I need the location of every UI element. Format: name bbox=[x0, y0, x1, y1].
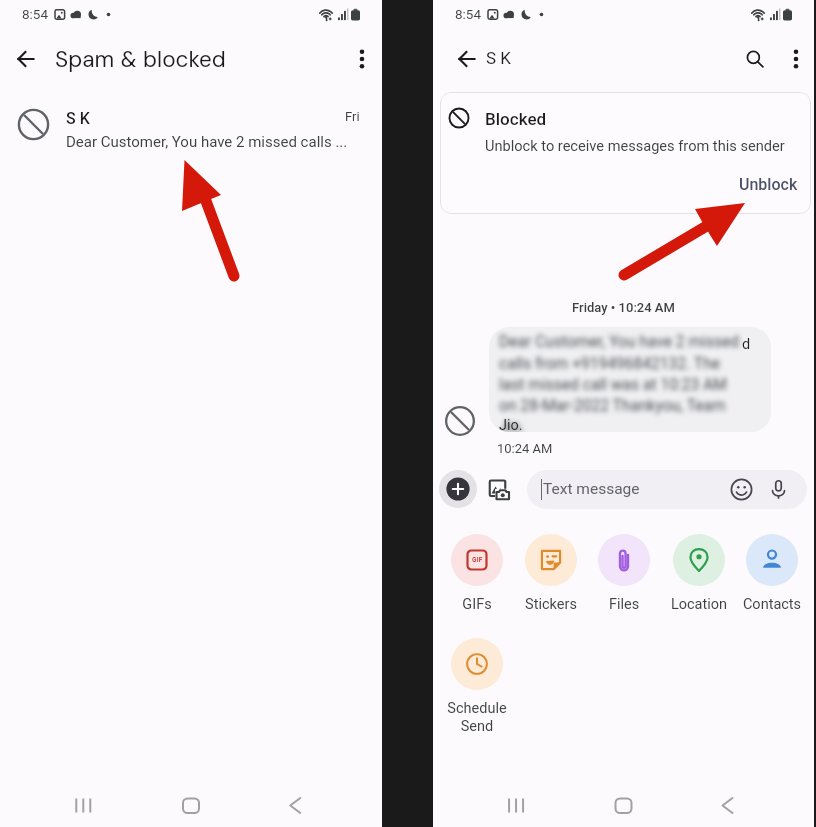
button[interactable]: Location bbox=[662, 534, 736, 613]
button[interactable]: Unblock bbox=[732, 171, 805, 198]
button[interactable]: Files bbox=[587, 534, 661, 613]
staticText: Dear Customer, You have 2 missed calls f… bbox=[499, 333, 740, 432]
button[interactable]: GIF bbox=[440, 534, 514, 613]
staticText: Contacts bbox=[735, 596, 809, 613]
button[interactable]: Schedule Send bbox=[440, 638, 514, 735]
button[interactable]: Contacts bbox=[735, 534, 809, 613]
staticText: S K bbox=[486, 48, 511, 68]
staticText: Blocked bbox=[485, 109, 547, 129]
staticText: Files bbox=[587, 596, 661, 613]
button[interactable]: Add attachment bbox=[439, 470, 477, 508]
staticText: Dear Customer, You have 2 missed calls .… bbox=[66, 133, 348, 151]
staticText: Unblock bbox=[739, 175, 798, 194]
staticText: GIFs bbox=[440, 596, 514, 613]
staticText: GIF bbox=[472, 556, 483, 564]
staticText: Fri bbox=[345, 109, 360, 124]
button[interactable]: More options bbox=[776, 39, 816, 79]
button[interactable]: Blocked bbox=[440, 92, 811, 214]
staticText: Text message bbox=[543, 480, 640, 498]
button[interactable]: Stickers bbox=[514, 534, 588, 613]
staticText: d bbox=[742, 336, 751, 353]
button[interactable]: Back bbox=[445, 37, 489, 81]
staticText: Stickers bbox=[514, 596, 588, 613]
staticText: Friday • 10:24 AM bbox=[433, 300, 814, 315]
staticText: 8:54 bbox=[455, 6, 482, 22]
button[interactable]: Send image bbox=[483, 472, 517, 506]
staticText: Spam & blocked bbox=[55, 45, 226, 74]
button[interactable]: Back bbox=[4, 37, 48, 81]
staticText: Schedule Send bbox=[440, 700, 514, 735]
staticText: S K bbox=[66, 109, 90, 128]
staticText: Unblock to receive messages from this se… bbox=[485, 137, 785, 154]
button[interactable]: Text message bbox=[527, 470, 807, 509]
button[interactable]: S K bbox=[0, 96, 382, 154]
button[interactable]: More options bbox=[342, 39, 382, 79]
staticText: 10:24 AM bbox=[497, 441, 553, 456]
button[interactable]: Dear Customer, You have 2 missed calls f… bbox=[489, 327, 771, 432]
button[interactable]: Search bbox=[735, 39, 775, 79]
staticText: Location bbox=[662, 596, 736, 613]
staticText: Jio. bbox=[499, 417, 523, 434]
staticText: 8:54 bbox=[22, 6, 49, 22]
